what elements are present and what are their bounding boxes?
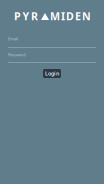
staticText: Login: [45, 70, 59, 77]
button[interactable]: Login: [43, 69, 61, 78]
staticText: MIDEN: [50, 9, 91, 23]
staticText: Password: [8, 52, 25, 57]
staticText: Email: [8, 36, 18, 41]
staticText: PYR: [14, 9, 38, 23]
